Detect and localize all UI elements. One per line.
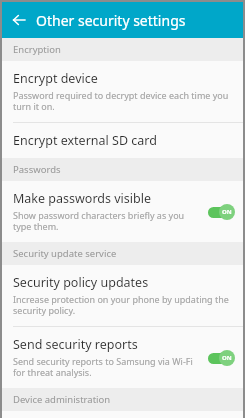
staticText: Security policy updates (13, 274, 149, 291)
staticText: Make passwords visible (13, 190, 151, 207)
staticText: ON (222, 208, 232, 216)
staticText: Security update service (13, 247, 117, 260)
button[interactable]: Encrypt external SD card (2, 123, 243, 158)
staticText: Other security settings (36, 11, 186, 30)
button[interactable]: Send security reports (2, 327, 243, 388)
button[interactable]: Make passwords visible (2, 181, 243, 242)
staticText: Encrypt external SD card (13, 132, 157, 149)
staticText: Encryption (13, 43, 61, 56)
button[interactable]: Security policy updates (2, 265, 243, 327)
staticText: ON (222, 354, 232, 362)
button[interactable]: Encrypt device (2, 61, 243, 123)
staticText: Show password characters briefly as you … (13, 209, 201, 233)
staticText: Send security reports to Samsung via Wi-… (13, 355, 201, 379)
staticText: Encrypt device (13, 70, 98, 87)
staticText: Send security reports (13, 336, 138, 353)
button[interactable]: Back (2, 3, 36, 37)
staticText: Increase protection on your phone by upd… (13, 293, 235, 317)
staticText: Passwords (13, 163, 61, 176)
staticText: Device administration (13, 393, 111, 406)
staticText: Password required to decrypt device each… (13, 89, 235, 113)
